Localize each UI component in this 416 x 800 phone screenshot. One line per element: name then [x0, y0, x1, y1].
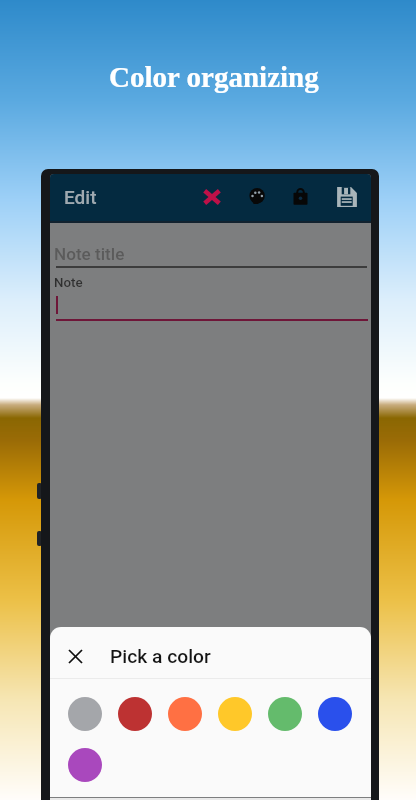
button[interactable]: Colour 7	[68, 748, 102, 782]
button[interactable]: Close colour picker	[55, 636, 95, 676]
button[interactable]: Colour 6	[318, 697, 352, 731]
staticText: Color organizing	[109, 61, 319, 93]
staticText: Edit	[64, 186, 97, 208]
staticText: Note title	[54, 244, 125, 264]
button[interactable]: Colour 2	[118, 697, 152, 731]
staticText: Pick a color	[110, 645, 211, 668]
button[interactable]: Colour 1	[68, 697, 102, 731]
staticText: Note	[54, 275, 83, 291]
button[interactable]: Colour 4	[218, 697, 252, 731]
button[interactable]: Discard note	[192, 175, 232, 219]
button[interactable]: Save note	[327, 175, 367, 219]
button[interactable]: Lock note	[281, 175, 321, 219]
button[interactable]: Colour 5	[268, 697, 302, 731]
button[interactable]: Pick a colour	[237, 175, 277, 219]
button[interactable]: Colour 3	[168, 697, 202, 731]
